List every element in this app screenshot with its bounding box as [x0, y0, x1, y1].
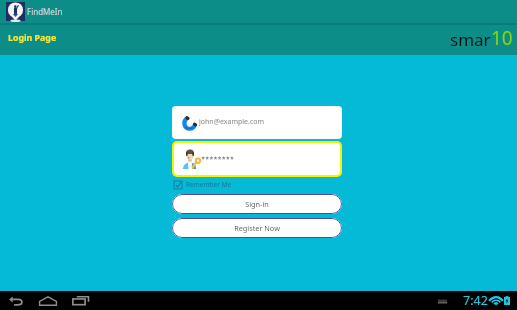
- button[interactable]: Sign-in: [172, 194, 342, 214]
- staticText: 10: [491, 25, 513, 51]
- staticText: Sign-in: [245, 199, 269, 209]
- staticText: 7:42: [463, 292, 488, 309]
- staticText: john@example.com: [199, 117, 265, 127]
- button[interactable]: Back: [6, 291, 26, 310]
- staticText: Login Page: [8, 32, 57, 44]
- button[interactable]: Home: [38, 291, 58, 310]
- staticText: smar: [450, 28, 491, 51]
- staticText: Remember Me: [186, 180, 232, 189]
- button[interactable]: Recent apps: [70, 291, 90, 310]
- button[interactable]: Register Now: [172, 218, 342, 238]
- staticText: FindMeIn: [27, 6, 63, 17]
- button[interactable]: john@example.com: [172, 106, 342, 139]
- button[interactable]: Remember Me: [174, 180, 232, 189]
- button[interactable]: [174, 143, 340, 175]
- staticText: Register Now: [234, 223, 280, 233]
